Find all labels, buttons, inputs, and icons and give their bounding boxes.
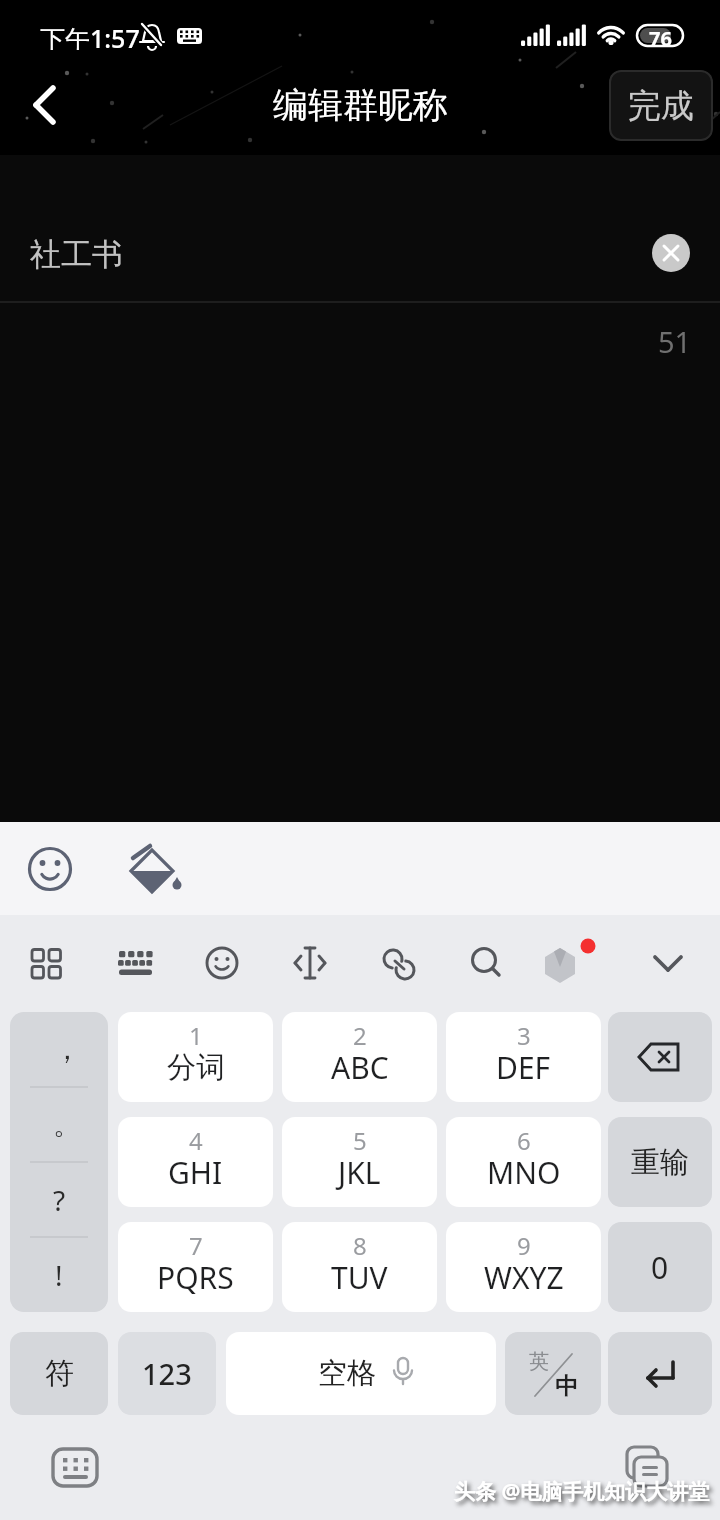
button[interactable]: 123: [118, 1332, 216, 1415]
button[interactable]: 9: [446, 1222, 601, 1312]
staticText: 分词: [167, 1049, 225, 1086]
button[interactable]: 空格: [226, 1332, 496, 1415]
button[interactable]: [16, 75, 80, 135]
button[interactable]: 符: [10, 1332, 108, 1415]
staticText: 51: [658, 322, 692, 358]
staticText: 完成: [628, 85, 694, 127]
staticText: TUV: [331, 1257, 388, 1298]
staticText: 。: [53, 1107, 81, 1142]
button[interactable]: [608, 1332, 712, 1415]
button[interactable]: [631, 923, 711, 1003]
staticText: 7: [189, 1229, 203, 1257]
staticText: !: [55, 1256, 63, 1294]
button[interactable]: [97, 923, 177, 1003]
staticText: DEF: [496, 1047, 551, 1088]
button[interactable]: [8, 923, 88, 1003]
button[interactable]: [453, 923, 533, 1003]
staticText: 0: [651, 1247, 669, 1288]
staticText: 8: [353, 1229, 367, 1257]
button[interactable]: [22, 841, 78, 897]
staticText: 9: [517, 1229, 531, 1257]
staticText: 1: [189, 1019, 203, 1047]
button[interactable]: [40, 1435, 110, 1501]
staticText: 5: [353, 1124, 367, 1152]
button[interactable]: [275, 923, 355, 1003]
button[interactable]: 0: [608, 1222, 712, 1312]
button[interactable]: 8: [282, 1222, 437, 1312]
staticText: 重输: [631, 1144, 689, 1181]
staticText: ABC: [331, 1047, 389, 1088]
button[interactable]: 5: [282, 1117, 437, 1207]
button[interactable]: [542, 923, 622, 1003]
button[interactable]: 4: [118, 1117, 273, 1207]
staticText: 123: [142, 1354, 192, 1393]
staticText: ?: [53, 1181, 66, 1219]
staticText: 3: [517, 1019, 531, 1047]
button[interactable]: [124, 841, 184, 897]
button[interactable]: [608, 1012, 712, 1102]
staticText: 4: [189, 1124, 203, 1152]
staticText: 下午1:57: [40, 21, 140, 50]
button[interactable]: ，: [10, 1012, 108, 1312]
button[interactable]: 英: [505, 1332, 601, 1415]
staticText: WXYZ: [484, 1257, 564, 1298]
staticText: 2: [353, 1019, 367, 1047]
staticText: 社工书: [30, 235, 123, 274]
button[interactable]: 完成: [609, 70, 713, 141]
staticText: 空格: [318, 1355, 376, 1392]
button[interactable]: 3: [446, 1012, 601, 1102]
button[interactable]: [364, 923, 444, 1003]
staticText: GHI: [168, 1152, 223, 1193]
staticText: 中: [555, 1372, 578, 1401]
button[interactable]: 1: [118, 1012, 273, 1102]
button[interactable]: [652, 234, 690, 272]
staticText: 符: [45, 1355, 74, 1392]
staticText: 6: [517, 1124, 531, 1152]
button[interactable]: 重输: [608, 1117, 712, 1207]
staticText: 英: [529, 1349, 549, 1374]
button[interactable]: 7: [118, 1222, 273, 1312]
staticText: 76: [649, 25, 672, 46]
button[interactable]: 2: [282, 1012, 437, 1102]
staticText: 头条 @电脑手机知识大讲堂: [454, 1477, 710, 1506]
staticText: PQRS: [157, 1257, 234, 1298]
button[interactable]: [186, 923, 266, 1003]
button[interactable]: [615, 1435, 685, 1501]
staticText: MNO: [487, 1152, 561, 1193]
button[interactable]: 6: [446, 1117, 601, 1207]
staticText: 编辑群昵称: [273, 83, 448, 127]
staticText: ，: [53, 1032, 81, 1067]
staticText: JKL: [338, 1152, 381, 1193]
